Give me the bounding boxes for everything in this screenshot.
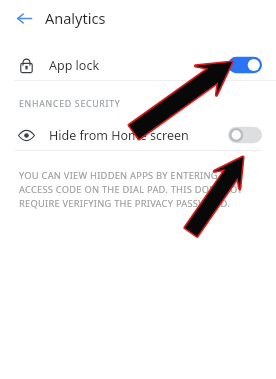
staticText: App lock (49, 57, 100, 74)
staticText: Hide from Home screen (49, 127, 189, 144)
button[interactable]: Back (11, 5, 37, 31)
staticText: ENHANCED SECURITY (19, 98, 121, 110)
button[interactable]: App lock (0, 50, 276, 80)
button[interactable]: Off (228, 125, 262, 145)
button[interactable]: On (228, 55, 262, 75)
staticText: YOU CAN VIEW HIDDEN APPS BY ENTERING THE… (19, 169, 248, 210)
staticText: Analytics (45, 8, 106, 28)
button[interactable]: Hide from Home screen (0, 120, 276, 150)
